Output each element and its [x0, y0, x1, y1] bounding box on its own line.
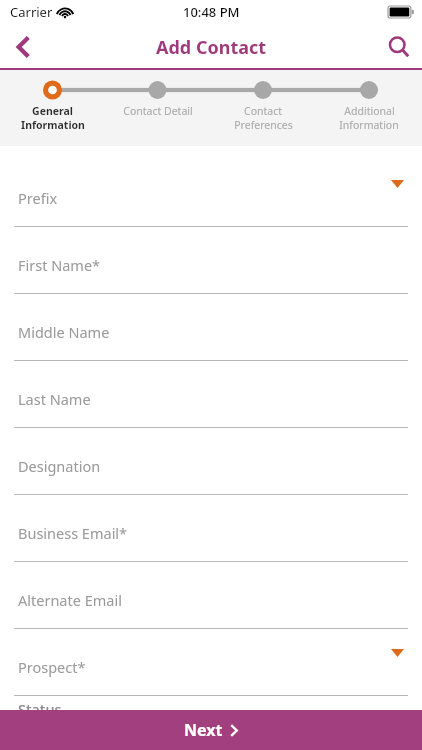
staticText: Prefix [18, 188, 58, 208]
staticText: Preferences [234, 118, 293, 132]
staticText: Middle Name [18, 322, 110, 342]
button[interactable]: Alternate Email [0, 562, 422, 629]
button[interactable]: First Name* [0, 227, 422, 294]
button[interactable]: Middle Name [0, 294, 422, 361]
staticText: Contact Detail [123, 104, 193, 118]
button[interactable]: Last Name [0, 361, 422, 428]
button[interactable]: Designation [0, 428, 422, 495]
staticText: Last Name [18, 389, 91, 409]
button[interactable]: Back [0, 24, 46, 70]
button[interactable]: Additional [316, 70, 422, 132]
staticText: Business Email* [18, 523, 128, 543]
button[interactable]: Prefix [0, 160, 422, 227]
staticText: 10:48 PM [183, 3, 240, 21]
staticText: Contact [244, 104, 282, 118]
staticText: Information [21, 118, 85, 132]
staticText: Status [18, 699, 62, 719]
button[interactable]: Contact [210, 70, 316, 132]
button[interactable]: Search [376, 24, 422, 70]
button[interactable]: Contact Detail [105, 70, 210, 118]
staticText: Alternate Email [18, 590, 122, 610]
button[interactable]: Business Email* [0, 495, 422, 562]
button[interactable]: Next [0, 710, 422, 750]
staticText: First Name* [18, 255, 101, 275]
staticText: Prospect* [18, 657, 86, 677]
staticText: Additional [344, 104, 395, 118]
button[interactable]: Prospect* [0, 629, 422, 696]
staticText: Next [184, 719, 223, 741]
staticText: General [32, 104, 73, 118]
staticText: Designation [18, 456, 101, 476]
staticText: Information [339, 118, 399, 132]
staticText: Carrier [10, 3, 53, 21]
button[interactable]: General [0, 70, 105, 132]
staticText: Add Contact [156, 35, 267, 60]
